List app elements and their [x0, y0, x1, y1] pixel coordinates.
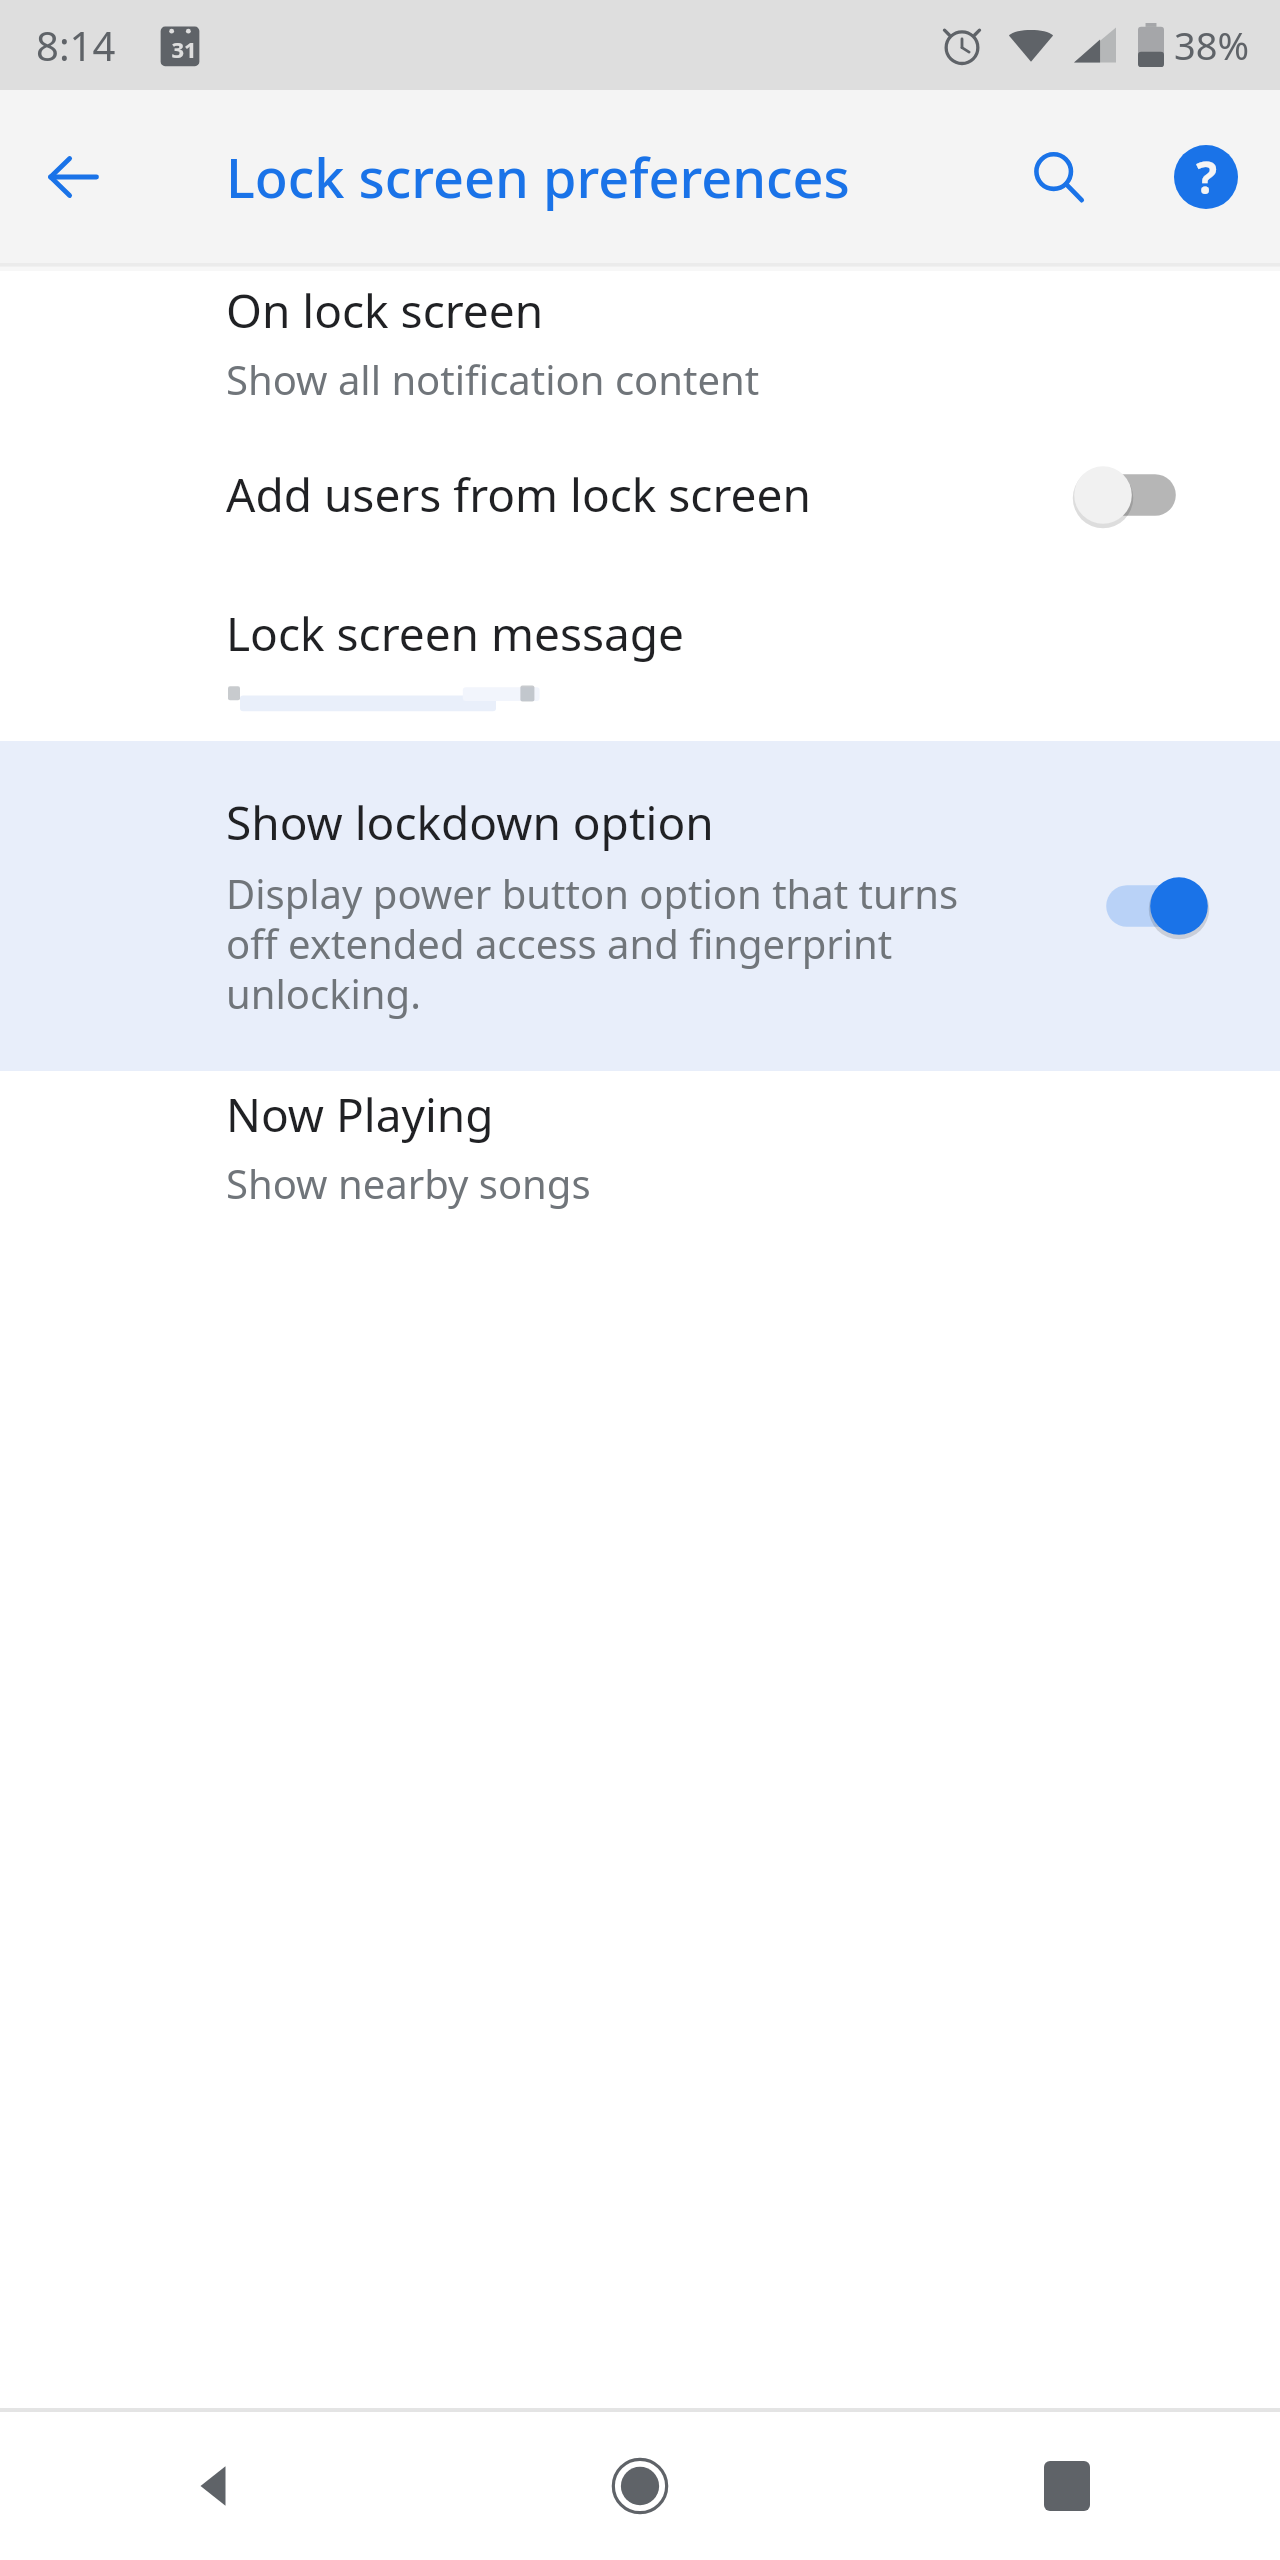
button[interactable]: Show lockdown option toggle, on: [1088, 866, 1218, 946]
button[interactable]: Home: [426, 2412, 853, 2560]
staticText: Lock screen preferences: [226, 140, 850, 214]
button[interactable]: Help: [1150, 121, 1262, 233]
button[interactable]: Search: [1002, 121, 1114, 233]
button[interactable]: Recent apps: [853, 2412, 1280, 2560]
staticText: 31: [162, 34, 206, 64]
staticText: Show all notification content: [226, 352, 760, 406]
button[interactable]: Add users from lock screen: [0, 413, 1280, 576]
button[interactable]: On lock screen: [0, 271, 1280, 413]
button[interactable]: Add users from lock screen toggle, off: [1064, 455, 1194, 535]
button[interactable]: Show lockdown option: [0, 741, 1280, 1071]
staticText: 38%: [1174, 19, 1250, 71]
button[interactable]: Navigate up: [17, 121, 129, 233]
staticText: Display power button option that turns o…: [226, 866, 986, 1021]
staticText: Lock screen message: [226, 602, 685, 665]
button[interactable]: Lock screen message: [0, 576, 1280, 741]
button[interactable]: Back: [0, 2412, 426, 2560]
staticText: Show nearby songs: [226, 1156, 591, 1210]
button[interactable]: Now Playing: [0, 1071, 1280, 1221]
staticText: ?: [1196, 147, 1217, 207]
staticText: Add users from lock screen: [226, 463, 1064, 526]
staticText: Show lockdown option: [226, 791, 714, 854]
staticText: On lock screen: [226, 279, 544, 342]
staticText: 8:14: [36, 18, 116, 72]
staticText: Now Playing: [226, 1083, 494, 1146]
